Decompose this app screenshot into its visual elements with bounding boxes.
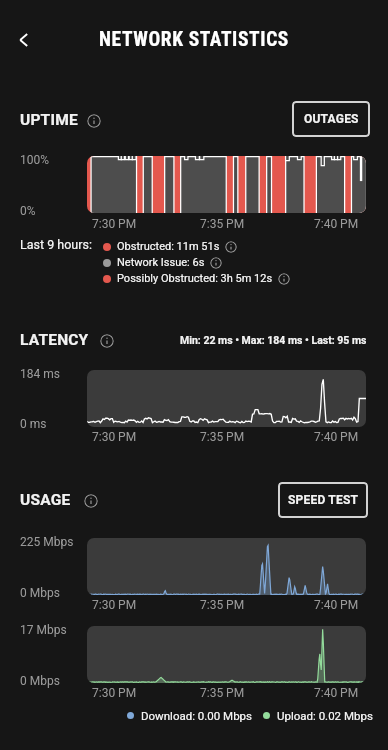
button[interactable]: OUTAGES	[292, 101, 370, 137]
staticText: Possibly Obstructed: 3h 5m 12s	[117, 272, 273, 285]
button[interactable]: Back	[6, 22, 42, 58]
staticText: 7:30 PM	[92, 430, 137, 444]
button[interactable]: USAGE info	[84, 494, 98, 508]
staticText: 225 Mbps	[20, 535, 74, 549]
staticText: Min: 22 ms • Max: 184 ms • Last: 95 ms	[180, 334, 367, 346]
button[interactable]: UPTIME info	[87, 114, 101, 128]
staticText: 7:30 PM	[92, 598, 137, 612]
staticText: 0 ms	[20, 417, 47, 431]
staticText: 7:40 PM	[314, 217, 359, 231]
staticText: Obstructed: 11m 51s	[117, 240, 220, 253]
staticText: 184 ms	[20, 367, 60, 381]
staticText: 17 Mbps	[20, 623, 67, 637]
staticText: 7:30 PM	[92, 217, 137, 231]
staticText: Download: 0.00 Mbps	[141, 709, 252, 722]
button[interactable]: LATENCY info	[100, 334, 114, 348]
staticText: 0%	[20, 204, 36, 218]
staticText: NETWORK STATISTICS	[99, 28, 289, 51]
button[interactable]: SPEED TEST	[278, 482, 368, 518]
staticText: UPTIME	[20, 111, 78, 129]
staticText: 7:35 PM	[200, 598, 245, 612]
staticText: LATENCY	[20, 331, 89, 349]
button[interactable]: More info	[210, 257, 222, 269]
button[interactable]: More info	[225, 241, 237, 253]
staticText: Last 9 hours:	[20, 237, 92, 252]
staticText: Network Issue: 6s	[117, 256, 205, 269]
staticText: Upload: 0.02 Mbps	[277, 709, 373, 722]
staticText: USAGE	[20, 491, 71, 509]
staticText: 0 Mbps	[20, 674, 60, 688]
staticText: 7:40 PM	[314, 430, 359, 444]
staticText: 7:35 PM	[200, 686, 245, 700]
staticText: 7:40 PM	[314, 598, 359, 612]
staticText: 7:40 PM	[314, 686, 359, 700]
staticText: SPEED TEST	[288, 493, 359, 507]
staticText: 100%	[20, 153, 50, 167]
staticText: 7:30 PM	[92, 686, 137, 700]
staticText: 7:35 PM	[200, 217, 245, 231]
button[interactable]: More info	[278, 273, 290, 285]
staticText: 0 Mbps	[20, 586, 60, 600]
staticText: OUTAGES	[304, 112, 359, 126]
staticText: 7:35 PM	[200, 430, 245, 444]
